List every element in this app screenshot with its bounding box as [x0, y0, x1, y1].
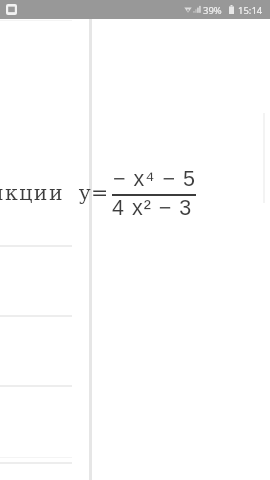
- staticText: нкции: [0, 181, 64, 205]
- staticText: 4 x² − 3: [112, 196, 193, 220]
- other: Battery 39 percent: [229, 5, 234, 14]
- staticText: y: [79, 181, 91, 205]
- button[interactable]: Task photo: [0, 19, 270, 480]
- staticText: 39%: [203, 4, 222, 17]
- staticText: 15:14: [238, 4, 263, 17]
- button[interactable]: Screenshot notification: [6, 4, 17, 15]
- staticText: =: [91, 181, 109, 205]
- other: Wi-Fi and mobile signal: [184, 4, 202, 15]
- staticText: − x⁴ − 5: [113, 167, 196, 191]
